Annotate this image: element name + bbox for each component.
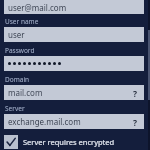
button[interactable]: Help xyxy=(130,117,140,127)
staticText: ? xyxy=(133,88,138,98)
staticText: Password xyxy=(5,46,35,55)
staticText: Server xyxy=(5,104,25,113)
staticText: user xyxy=(8,29,25,40)
button[interactable]: user@mail.com xyxy=(4,0,144,14)
staticText: User name xyxy=(5,17,39,26)
button[interactable]: user xyxy=(4,27,144,42)
staticText: Domain xyxy=(5,75,30,84)
button[interactable] xyxy=(4,56,144,71)
staticText: ? xyxy=(133,117,138,127)
staticText: user@mail.com xyxy=(8,2,67,13)
staticText: mail.com xyxy=(8,87,43,98)
button[interactable]: Help xyxy=(130,88,140,98)
button[interactable]: mail.com xyxy=(4,85,144,100)
button[interactable]: Server requires encrypted connection xyxy=(4,135,144,149)
button[interactable]: exchange.mail.com xyxy=(4,114,144,129)
staticText: exchange.mail.com xyxy=(8,116,81,127)
staticText: Server requires encrypted connection xyxy=(23,137,144,147)
